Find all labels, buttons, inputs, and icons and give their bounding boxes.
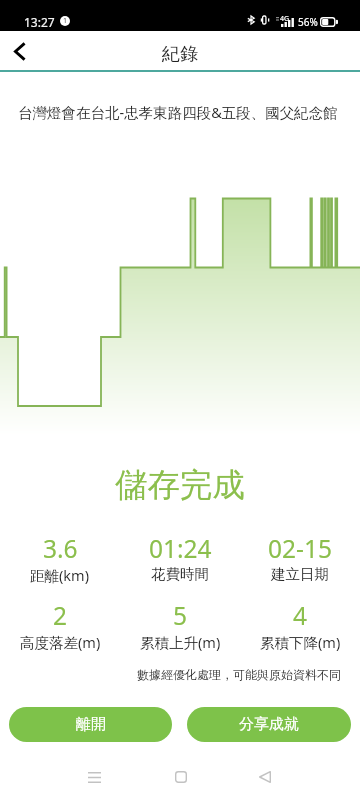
staticText: 累積上升(m) xyxy=(140,632,221,652)
button[interactable]: Back xyxy=(0,31,40,70)
staticText: 台灣燈會在台北-忠孝東路四段&五段、國父紀念館 xyxy=(18,102,338,122)
button[interactable]: 分享成就 xyxy=(187,707,351,742)
staticText: 02-15 xyxy=(268,532,332,565)
staticText: 高度落差(m) xyxy=(20,632,101,652)
staticText: 4 xyxy=(293,599,308,632)
button[interactable]: 離開 xyxy=(9,707,172,742)
button[interactable]: Back xyxy=(241,756,289,798)
button[interactable]: Recent apps xyxy=(70,756,118,798)
staticText: 分享成就 xyxy=(239,715,299,734)
staticText: 2 xyxy=(53,599,68,632)
staticText: 5 xyxy=(173,599,188,632)
button[interactable]: Home xyxy=(157,756,205,798)
staticText: 花費時間 xyxy=(151,565,209,583)
staticText: 56% xyxy=(298,15,318,29)
staticText: 1 xyxy=(63,16,68,26)
staticText: 4G xyxy=(280,14,290,24)
staticText: 01:24 xyxy=(149,532,212,565)
staticText: 離開 xyxy=(76,715,106,734)
staticText: 建立日期 xyxy=(271,565,329,583)
staticText: 儲存完成 xyxy=(0,465,360,506)
staticText: 13:27 xyxy=(24,14,55,30)
staticText: 數據經優化處理，可能與原始資料不同 xyxy=(0,667,341,682)
staticText: 距離(km) xyxy=(30,565,90,585)
staticText: 3.6 xyxy=(43,532,78,565)
staticText: 紀錄 xyxy=(162,43,198,66)
staticText: 累積下降(m) xyxy=(260,632,341,652)
